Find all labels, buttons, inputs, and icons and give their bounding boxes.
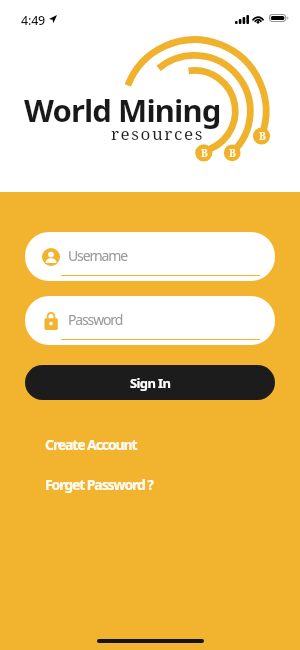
staticText: resources <box>111 122 204 145</box>
staticText: B <box>259 129 266 143</box>
staticText: World Mining <box>24 89 221 131</box>
button[interactable]: Password <box>25 296 275 345</box>
staticText: Forget Password ? <box>45 475 153 494</box>
staticText: B <box>201 146 208 160</box>
staticText: 4:49 <box>21 12 46 29</box>
button[interactable]: Sign In <box>25 365 275 400</box>
staticText: B <box>229 146 236 160</box>
staticText: Create Account <box>45 435 137 454</box>
staticText: Sign In <box>130 374 171 392</box>
button[interactable]: Forget Password ? <box>45 475 153 494</box>
staticText: Password <box>68 310 123 329</box>
staticText: Username <box>68 246 127 265</box>
button[interactable]: Create Account <box>45 435 137 454</box>
button[interactable]: Username <box>25 232 275 281</box>
